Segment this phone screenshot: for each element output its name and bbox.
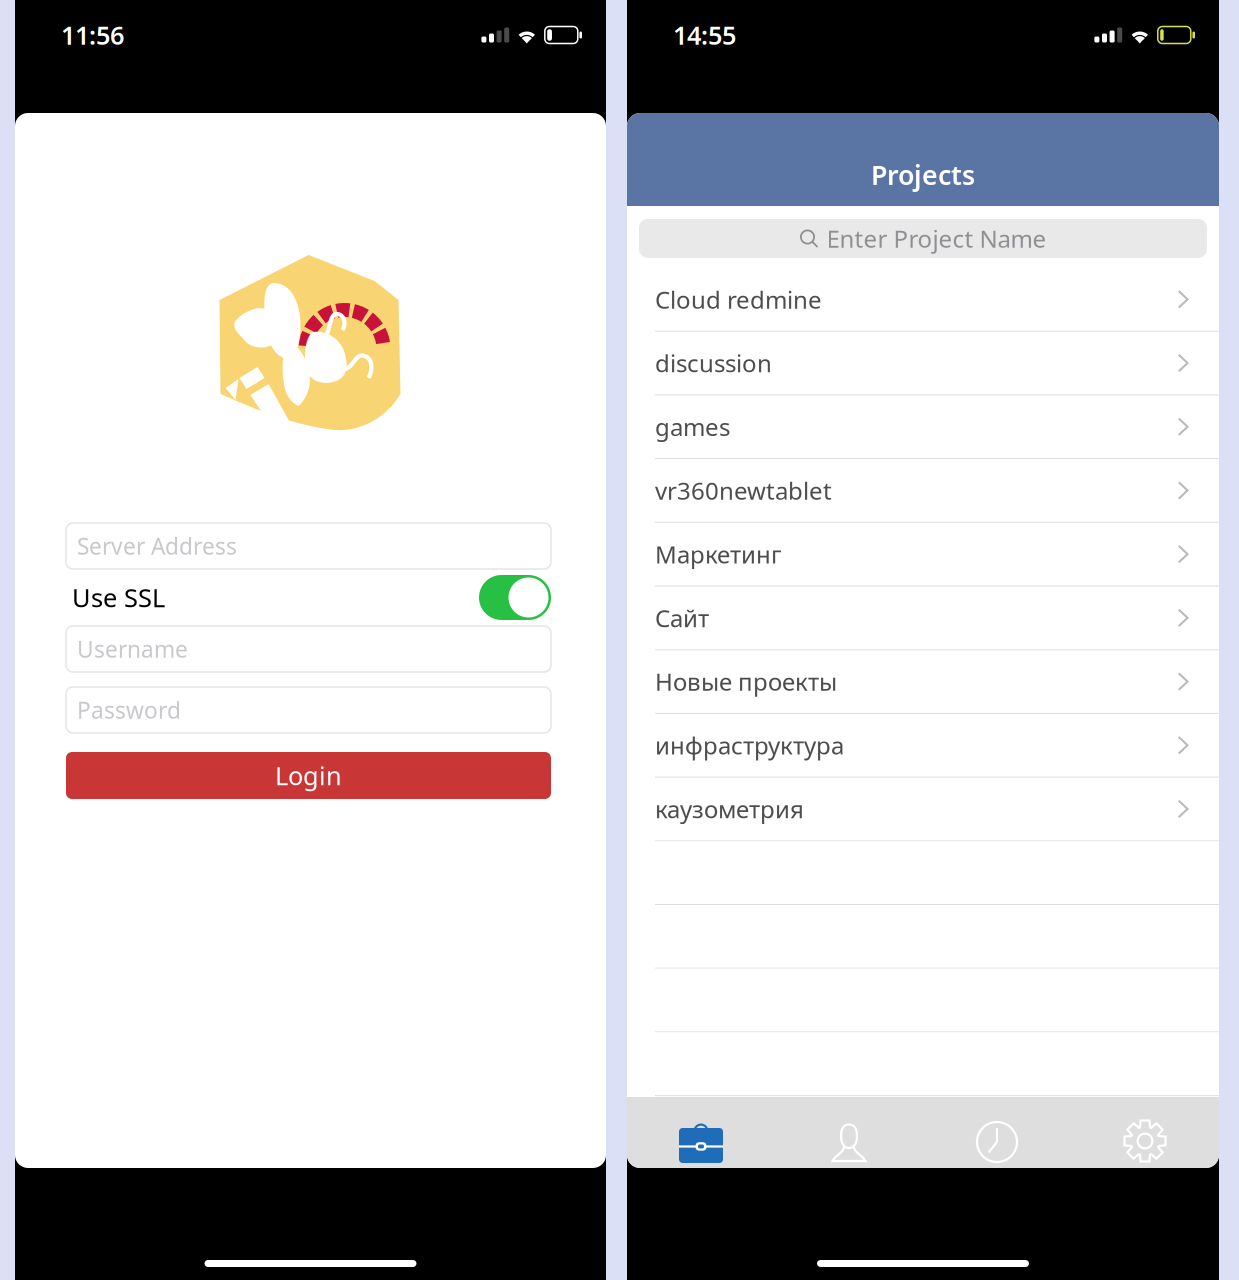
button[interactable]: Settings [1071, 1120, 1219, 1163]
button[interactable]: Сайт [627, 586, 1219, 650]
button[interactable]: Use SSL [479, 575, 551, 620]
staticText: 11:56 [61, 18, 124, 52]
staticText: Server Address [77, 531, 237, 561]
staticText: 14:55 [673, 18, 736, 52]
button[interactable]: discussion [627, 332, 1219, 395]
staticText: discussion [655, 347, 772, 379]
button[interactable]: Account [775, 1123, 923, 1163]
button[interactable]: Enter Project Name [627, 206, 1219, 268]
staticText: каузометрия [655, 793, 804, 825]
staticText: Новые проекты [655, 666, 837, 697]
button[interactable]: Login [66, 752, 551, 799]
staticText: Login [275, 759, 342, 792]
button[interactable]: Time entries [923, 1121, 1071, 1163]
staticText: vr360newtablet [655, 474, 832, 506]
button[interactable]: Cloud redmine [627, 268, 1219, 332]
staticText: Сайт [655, 602, 709, 634]
button[interactable]: Projects [627, 1122, 775, 1163]
button[interactable]: Новые проекты [627, 650, 1219, 714]
staticText: Cloud redmine [655, 283, 822, 315]
button[interactable]: Маркетинг [627, 523, 1219, 586]
staticText: Password [77, 695, 181, 725]
staticText: Маркетинг [655, 538, 782, 570]
button[interactable]: games [627, 395, 1219, 459]
button[interactable]: каузометрия [627, 778, 1219, 841]
button[interactable]: vr360newtablet [627, 459, 1219, 523]
staticText: Enter Project Name [826, 223, 1046, 254]
staticText: games [655, 411, 730, 443]
staticText: Projects [871, 157, 975, 192]
button[interactable]: инфраструктура [627, 714, 1219, 778]
staticText: инфраструктура [655, 729, 844, 761]
staticText: Use SSL [72, 581, 165, 614]
staticText: Username [77, 634, 188, 664]
